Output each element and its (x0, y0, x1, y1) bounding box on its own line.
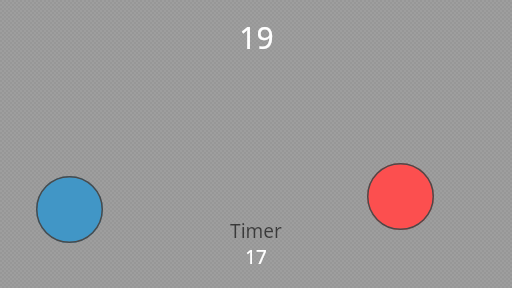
button[interactable]: Red target (367, 163, 434, 230)
button[interactable]: Blue target (36, 176, 103, 243)
staticText: 19 (239, 17, 274, 58)
staticText: 17 (245, 244, 267, 270)
staticText: Timer (230, 218, 282, 244)
